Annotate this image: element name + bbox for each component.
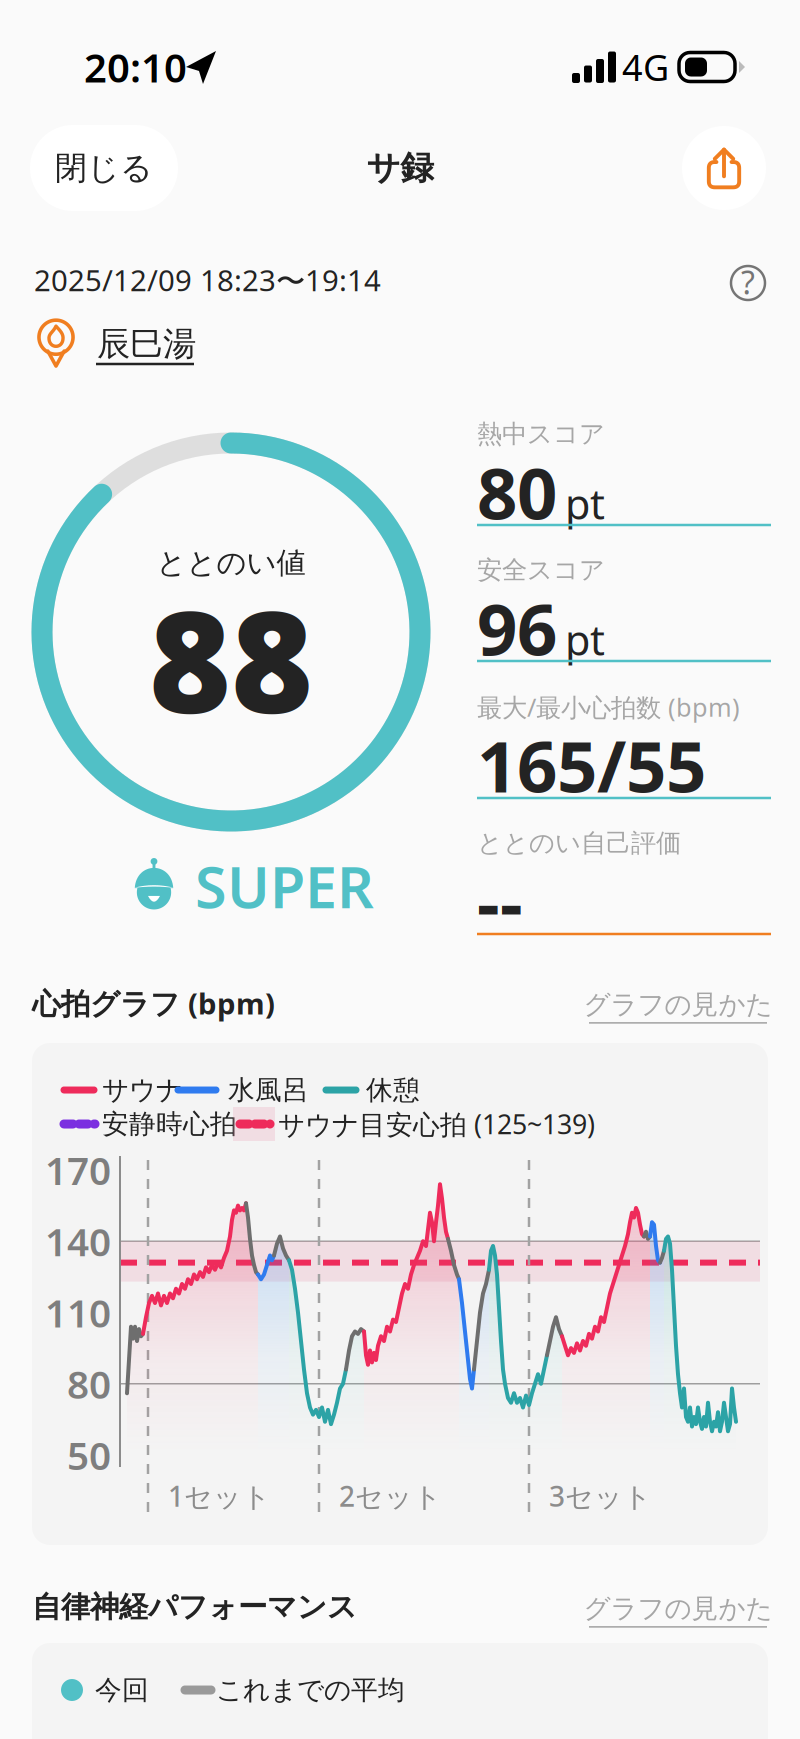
staticText: 96 bbox=[477, 581, 557, 675]
staticText: 辰巳湯 bbox=[97, 323, 196, 364]
staticText: ととのい値 bbox=[156, 545, 305, 581]
button[interactable]: グラフの見かた bbox=[583, 982, 773, 1030]
staticText: グラフの見かた bbox=[583, 988, 772, 1021]
staticText: 休憩 bbox=[366, 1074, 420, 1106]
staticText: 110 bbox=[45, 1287, 111, 1338]
staticText: サウナ目安心拍 (125~139) bbox=[278, 1106, 595, 1142]
staticText: 1セット bbox=[168, 1477, 271, 1515]
button[interactable]: 辰巳湯 bbox=[0, 0, 220, 380]
staticText: 最大/最小心拍数 (bpm) bbox=[477, 690, 740, 724]
staticText: 20:10 bbox=[84, 40, 187, 93]
staticText: 今回 bbox=[95, 1674, 149, 1706]
staticText: 170 bbox=[45, 1144, 111, 1196]
staticText: pt bbox=[565, 612, 605, 667]
staticText: サウナ bbox=[102, 1074, 183, 1106]
staticText: 2025/12/09 18:23〜19:14 bbox=[34, 260, 381, 299]
button[interactable]: 閉じる bbox=[30, 125, 178, 211]
staticText: グラフの見かた bbox=[583, 1592, 772, 1625]
staticText: 水風呂 bbox=[228, 1074, 309, 1106]
staticText: -- bbox=[477, 854, 523, 948]
staticText: 140 bbox=[45, 1216, 111, 1267]
staticText: 閉じる bbox=[55, 148, 153, 188]
staticText: ととのい自己評価 bbox=[477, 827, 681, 858]
staticText: 50 bbox=[67, 1429, 111, 1481]
staticText: 心拍グラフ (bpm) bbox=[32, 983, 275, 1022]
staticText: これまでの平均 bbox=[216, 1674, 405, 1706]
staticText: 165/55 bbox=[477, 718, 706, 812]
staticText: 4G bbox=[622, 43, 669, 91]
staticText: 88 bbox=[149, 566, 313, 752]
staticText: 安全スコア bbox=[477, 554, 605, 585]
staticText: pt bbox=[565, 476, 605, 531]
staticText: 2セット bbox=[339, 1477, 442, 1515]
staticText: 80 bbox=[477, 445, 557, 539]
staticText: SUPER bbox=[195, 848, 374, 924]
staticText: 80 bbox=[67, 1358, 111, 1409]
staticText: 自律神経パフォーマンス bbox=[32, 1589, 357, 1625]
button[interactable]: グラフの見かた bbox=[583, 1586, 773, 1634]
button[interactable]: Help bbox=[727, 262, 769, 304]
staticText: 熱中スコア bbox=[477, 418, 605, 449]
staticText: 3セット bbox=[549, 1477, 652, 1515]
staticText: サ録 bbox=[366, 147, 433, 188]
staticText: ? bbox=[741, 261, 755, 303]
staticText: 安静時心拍 bbox=[102, 1108, 237, 1140]
button[interactable]: Share bbox=[682, 126, 766, 210]
